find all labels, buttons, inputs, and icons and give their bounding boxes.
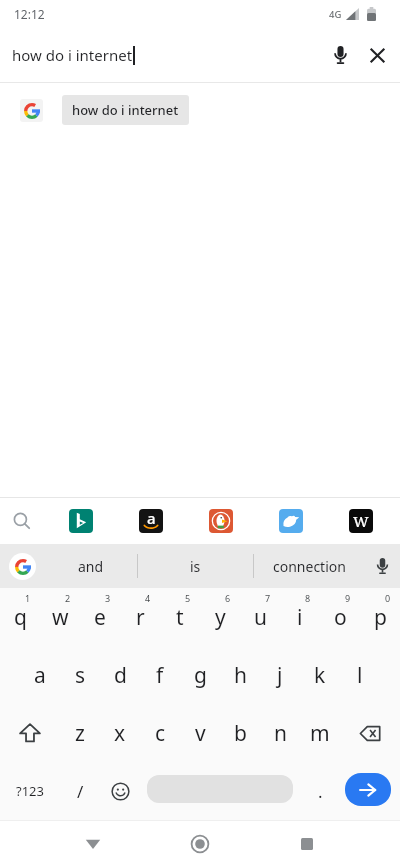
button[interactable]: p <box>360 588 400 646</box>
button[interactable]: u <box>240 588 280 646</box>
button[interactable]: r <box>120 588 160 646</box>
button[interactable]: w <box>40 588 80 646</box>
button[interactable]: y <box>200 588 240 646</box>
staticText: 9 <box>345 592 351 604</box>
staticText: i <box>297 603 303 632</box>
staticText: a <box>147 509 156 528</box>
button[interactable]: g <box>180 646 220 704</box>
button[interactable]: how do i internet <box>62 95 189 125</box>
staticText: h <box>234 661 247 690</box>
button[interactable]: how do i internet <box>0 28 400 82</box>
staticText: t <box>176 603 184 632</box>
button[interactable]: connection <box>254 544 364 588</box>
button[interactable] <box>100 762 140 820</box>
button[interactable]: z <box>60 704 100 762</box>
staticText: m <box>310 719 330 748</box>
staticText: r <box>136 603 145 632</box>
staticText: v <box>195 719 206 748</box>
button[interactable]: is <box>138 544 253 588</box>
button[interactable] <box>364 544 400 588</box>
staticText: f <box>156 661 164 690</box>
button[interactable]: b <box>220 704 260 762</box>
staticText: a <box>34 661 46 690</box>
button[interactable]: c <box>140 704 180 762</box>
staticText: w <box>52 603 69 632</box>
staticText: o <box>334 603 347 632</box>
button[interactable]: q <box>0 588 40 646</box>
staticText: / <box>77 780 84 803</box>
button[interactable]: h <box>220 646 260 704</box>
button[interactable]: ?123 <box>0 762 60 820</box>
button[interactable]: n <box>260 704 300 762</box>
staticText: 7 <box>265 592 271 604</box>
staticText: 1 <box>25 592 31 604</box>
button[interactable] <box>180 824 220 864</box>
button[interactable] <box>287 824 327 864</box>
button[interactable]: t <box>160 588 200 646</box>
staticText: how do i internet <box>72 101 179 119</box>
staticText: k <box>314 661 326 690</box>
staticText: c <box>155 719 166 748</box>
staticText: b <box>234 719 247 748</box>
staticText: 5 <box>185 592 191 604</box>
button[interactable]: l <box>340 646 380 704</box>
staticText: W <box>353 511 369 531</box>
button[interactable]: j <box>260 646 300 704</box>
button[interactable]: / <box>60 762 100 820</box>
staticText: is <box>190 557 201 576</box>
button[interactable] <box>140 762 300 820</box>
button[interactable] <box>69 509 93 533</box>
staticText: l <box>357 661 363 690</box>
staticText: z <box>75 719 85 748</box>
button[interactable]: v <box>180 704 220 762</box>
staticText: e <box>94 603 106 632</box>
staticText: g <box>194 661 207 690</box>
button[interactable]: W <box>349 509 373 533</box>
button[interactable] <box>328 43 352 67</box>
button[interactable]: o <box>320 588 360 646</box>
button[interactable] <box>279 509 303 533</box>
staticText: y <box>215 603 226 632</box>
button[interactable] <box>340 704 400 762</box>
button[interactable] <box>73 824 113 864</box>
staticText: q <box>14 603 27 632</box>
button[interactable]: a <box>20 646 60 704</box>
staticText: 4 <box>145 592 151 604</box>
staticText: j <box>277 661 283 690</box>
staticText: connection <box>273 557 346 576</box>
staticText: d <box>114 661 127 690</box>
button[interactable]: e <box>80 588 120 646</box>
button[interactable] <box>0 704 60 762</box>
staticText: u <box>254 603 267 632</box>
staticText: how do i internet <box>12 45 133 65</box>
button[interactable]: and <box>44 544 137 588</box>
staticText: x <box>114 719 126 748</box>
staticText: 8 <box>305 592 311 604</box>
button[interactable] <box>10 509 34 533</box>
staticText: and <box>78 557 104 576</box>
staticText: n <box>274 719 287 748</box>
staticText: 0 <box>385 592 391 604</box>
button[interactable]: f <box>140 646 180 704</box>
button[interactable] <box>340 762 400 820</box>
button[interactable] <box>0 544 44 588</box>
staticText: 3 <box>105 592 111 604</box>
staticText: . <box>318 780 323 803</box>
button[interactable]: d <box>100 646 140 704</box>
button[interactable]: s <box>60 646 100 704</box>
staticText: 6 <box>225 592 231 604</box>
staticText: 12:12 <box>14 6 45 22</box>
staticText: s <box>75 661 86 690</box>
staticText: p <box>374 603 387 632</box>
staticText: 4G <box>329 8 342 21</box>
staticText: ?123 <box>16 782 44 800</box>
button[interactable]: m <box>300 704 340 762</box>
button[interactable]: k <box>300 646 340 704</box>
button[interactable]: x <box>100 704 140 762</box>
staticText: 2 <box>65 592 71 604</box>
button[interactable] <box>209 509 233 533</box>
button[interactable]: i <box>280 588 320 646</box>
button[interactable] <box>365 43 389 67</box>
button[interactable]: a <box>139 509 163 533</box>
button[interactable]: . <box>300 762 340 820</box>
